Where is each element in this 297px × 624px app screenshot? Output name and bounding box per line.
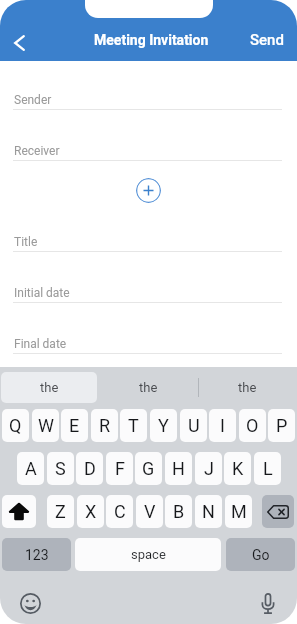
button[interactable]: Meeting Invitation <box>63 30 240 50</box>
staticText: J <box>204 458 214 479</box>
button[interactable]: D <box>76 452 103 485</box>
staticText: C <box>114 501 126 522</box>
button[interactable]: T <box>120 409 147 442</box>
staticText: Z <box>55 501 66 522</box>
staticText: Meeting Invitation <box>94 32 209 48</box>
staticText: T <box>128 415 139 436</box>
button[interactable]: the <box>99 372 197 403</box>
staticText: the <box>139 380 158 395</box>
button[interactable]: X <box>77 495 104 528</box>
button[interactable]: N <box>195 495 222 528</box>
staticText: L <box>263 458 273 479</box>
staticText: H <box>172 458 185 479</box>
staticText: B <box>173 501 185 522</box>
button[interactable]: Voice input <box>253 588 283 618</box>
button[interactable]: Z <box>47 495 74 528</box>
staticText: Title <box>14 235 38 249</box>
staticText: O <box>246 415 259 436</box>
button[interactable]: J <box>195 452 222 485</box>
button[interactable]: Q <box>2 409 29 442</box>
staticText: Final date <box>14 337 67 351</box>
staticText: V <box>144 501 156 522</box>
staticText: S <box>55 458 66 479</box>
staticText: W <box>38 415 54 436</box>
staticText: E <box>69 415 80 436</box>
staticText: F <box>115 458 125 479</box>
staticText: G <box>142 458 155 479</box>
button[interactable]: H <box>165 452 192 485</box>
staticText: the <box>40 380 59 395</box>
staticText: Send <box>250 31 284 49</box>
button[interactable]: Go <box>226 538 295 571</box>
button[interactable]: M <box>225 495 252 528</box>
button[interactable]: Send <box>241 28 293 52</box>
button[interactable]: R <box>91 409 118 442</box>
staticText: Initial date <box>14 286 70 300</box>
staticText: 123 <box>25 547 49 563</box>
button[interactable]: the <box>199 372 296 403</box>
button[interactable]: 123 <box>2 538 71 571</box>
button[interactable]: O <box>239 409 266 442</box>
button[interactable]: C <box>106 495 133 528</box>
button[interactable]: E <box>61 409 88 442</box>
button[interactable]: G <box>135 452 162 485</box>
staticText: A <box>25 458 37 479</box>
button[interactable]: Shift <box>2 495 36 528</box>
button[interactable]: L <box>254 452 281 485</box>
button[interactable]: P <box>268 409 295 442</box>
button[interactable]: Back <box>4 28 34 58</box>
staticText: Go <box>252 547 270 563</box>
staticText: N <box>202 501 215 522</box>
button[interactable]: B <box>165 495 192 528</box>
staticText: Sender <box>14 93 52 107</box>
staticText: D <box>84 458 96 479</box>
button[interactable]: I <box>209 409 236 442</box>
staticText: Receiver <box>14 144 60 158</box>
button[interactable]: Backspace <box>262 495 294 528</box>
button[interactable]: the <box>1 372 97 403</box>
other: Shift <box>10 504 28 519</box>
staticText: I <box>220 415 225 436</box>
staticText: space <box>131 547 166 562</box>
button[interactable]: F <box>106 452 133 485</box>
button[interactable]: V <box>136 495 163 528</box>
button[interactable]: U <box>180 409 207 442</box>
staticText: M <box>231 501 247 522</box>
staticText: Y <box>158 415 169 436</box>
button[interactable]: W <box>32 409 59 442</box>
button[interactable]: K <box>224 452 251 485</box>
other: Backspace <box>267 505 289 519</box>
staticText: the <box>238 380 257 395</box>
button[interactable]: S <box>47 452 74 485</box>
staticText: K <box>232 458 244 479</box>
button[interactable]: Emoji keyboard <box>15 588 45 618</box>
staticText: X <box>85 501 97 522</box>
button[interactable]: space <box>75 538 221 571</box>
button[interactable]: Y <box>150 409 177 442</box>
staticText: R <box>99 415 111 436</box>
staticText: Q <box>9 415 22 436</box>
button[interactable]: Add participant <box>136 178 161 203</box>
staticText: P <box>276 415 288 436</box>
button[interactable]: A <box>17 452 44 485</box>
staticText: U <box>188 415 200 436</box>
